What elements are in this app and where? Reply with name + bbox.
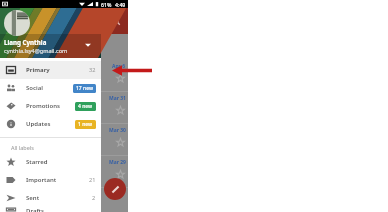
button[interactable]: Sent [0,189,101,207]
staticText: Updates [26,120,75,128]
staticText: 21 [89,176,96,184]
staticText: All labels [11,144,34,151]
staticText: Primary [26,66,89,74]
button[interactable]: Promotions [0,97,101,115]
staticText: Sent [26,194,92,202]
button[interactable]: Account photo [4,10,30,36]
staticText: 17 new [76,85,93,92]
staticText: Apr 6 [112,63,126,70]
staticText: cynthia.lsy4@gmail.com [4,47,68,55]
button[interactable]: Mar 29 [0,156,128,188]
button[interactable]: Updates [0,115,101,133]
button[interactable]: Compose [104,178,126,200]
staticText: Mar 30 [109,127,126,134]
staticText: 4:49 [115,1,126,8]
button[interactable]: Apr 6 [0,60,128,92]
staticText: 1 new [78,121,93,128]
button[interactable]: Primary [0,61,101,79]
button[interactable]: Expand accounts [83,40,93,50]
button[interactable]: Mar 30 [0,124,128,156]
staticText: Liang Cynthia [4,38,47,46]
staticText: Drafts [26,207,96,212]
staticText: 32 [89,66,96,74]
staticText: Promotions [26,102,75,110]
button[interactable]: Mar 31 [0,92,128,124]
staticText: Important [26,176,89,184]
staticText: Mar 31 [109,95,126,102]
button[interactable]: Social [0,79,101,97]
staticText: Social [26,84,73,92]
button[interactable]: Starred [0,153,101,171]
staticText: 2 [92,194,96,202]
staticText: 61% [101,1,112,8]
staticText: Mar 29 [109,159,126,166]
button[interactable]: Drafts [0,207,101,212]
staticText: Starred [26,158,96,166]
button[interactable]: Search [108,13,124,29]
staticText: 4 new [78,103,93,110]
button[interactable]: Important [0,171,101,189]
